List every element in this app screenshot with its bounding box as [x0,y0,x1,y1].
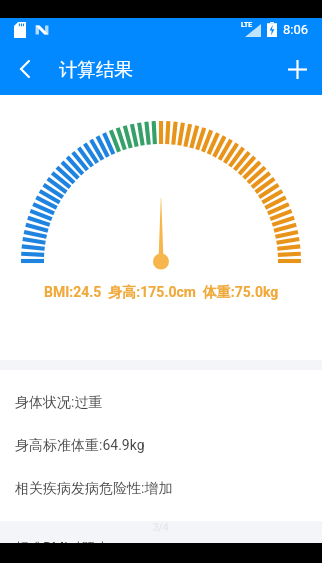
button[interactable]: Back [6,50,44,88]
staticText: 8:06 [283,22,309,37]
staticText: 身体状况:过重 [15,394,103,412]
button[interactable]: 相关疾病发病危险性:增加 [0,467,322,510]
staticText: 标准BMI对照表 [15,540,110,558]
staticText: LTE [241,21,253,29]
staticText: 3/4 [153,522,169,534]
staticText: 身高标准体重:64.9kg [15,437,145,455]
staticText: 相关疾病发病危险性:增加 [15,480,173,498]
staticText: 计算结果 [59,58,133,81]
staticText: BMI:24.5 身高:175.0cm 体重:75.0kg [44,284,279,302]
button[interactable]: Add [273,45,321,93]
button[interactable]: 身高标准体重:64.9kg [0,424,322,467]
button[interactable]: 身体状况:过重 [0,381,322,424]
